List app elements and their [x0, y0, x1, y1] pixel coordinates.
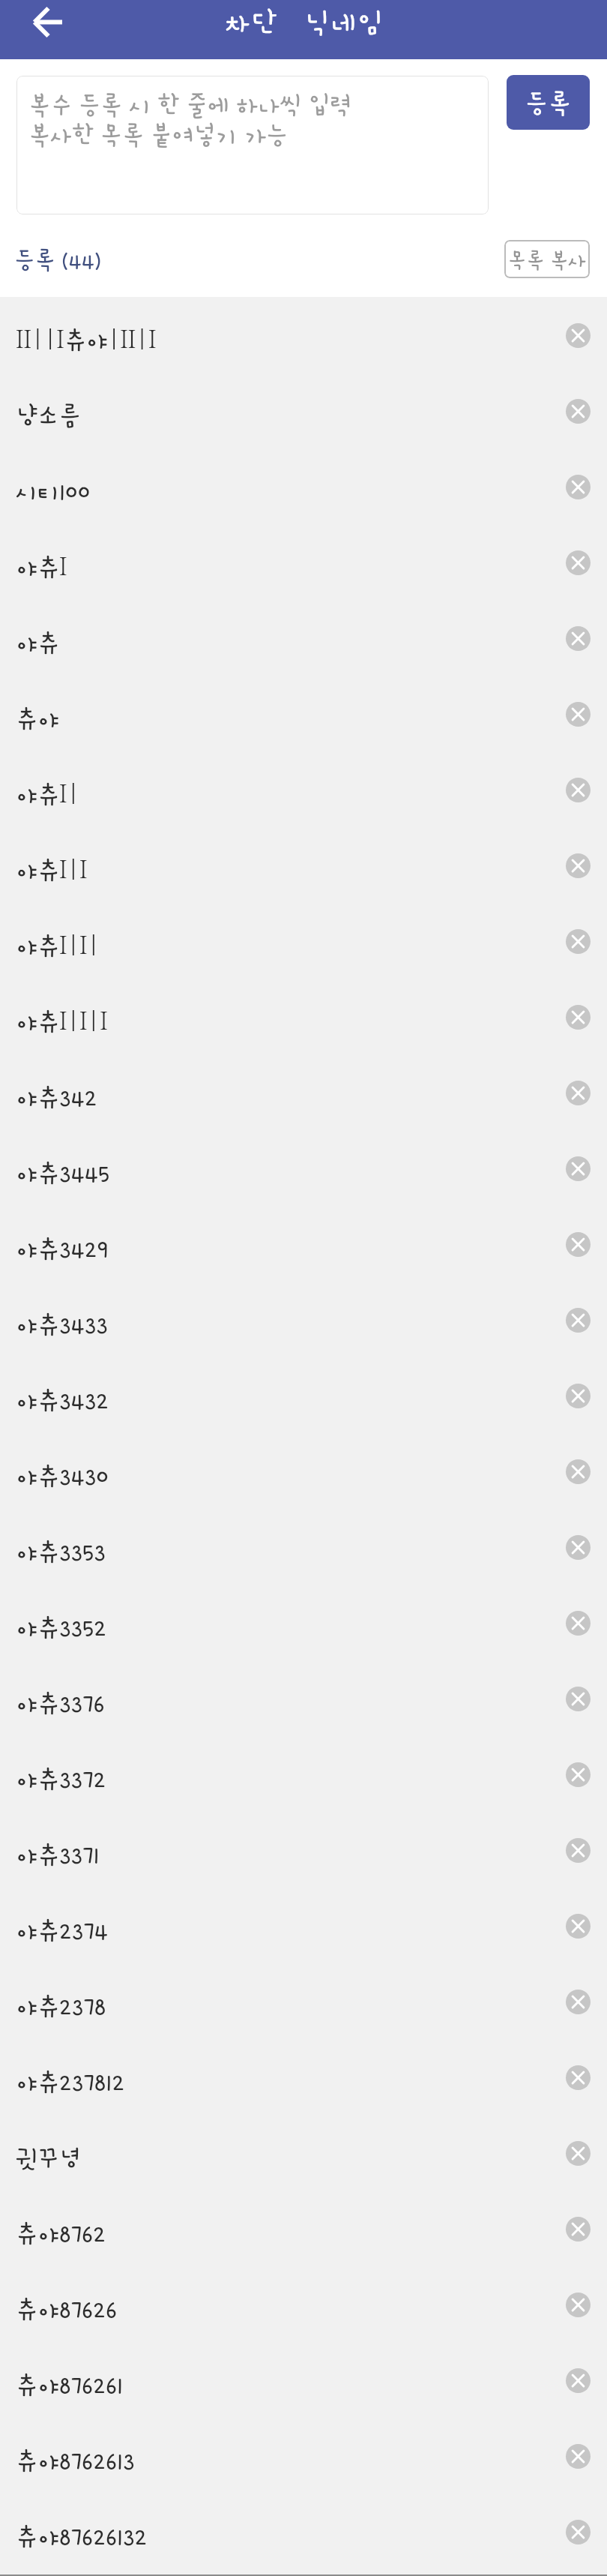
staticText: 야츄I|I: [16, 857, 88, 884]
button[interactable]: Remove: [559, 771, 597, 808]
staticText: 야츄: [16, 630, 59, 657]
staticText: 복수 등록 시 한 줄에 하나씩 입력 복사한 목록 붙여넣기 가능: [28, 92, 352, 149]
staticText: 냥소름: [16, 403, 81, 430]
button[interactable]: Remove: [559, 922, 597, 960]
button[interactable]: 야츄3433: [0, 1282, 607, 1357]
staticText: 야츄2378: [16, 1993, 106, 2020]
button[interactable]: Remove: [559, 1831, 597, 1869]
button[interactable]: Remove: [559, 1453, 597, 1490]
button[interactable]: Remove: [559, 847, 597, 884]
button[interactable]: Remove: [559, 695, 597, 733]
staticText: 야츄3445: [16, 1160, 110, 1187]
staticText: 목록 복사: [508, 250, 587, 272]
button[interactable]: 야츄2378: [0, 1963, 607, 2039]
button[interactable]: 목록 복사: [504, 240, 590, 278]
staticText: 야츄2374: [16, 1918, 109, 1945]
staticText: 등록: [525, 90, 572, 118]
button[interactable]: 야츄3445: [0, 1130, 607, 1206]
button[interactable]: 츄야: [0, 676, 607, 751]
staticText: 야츄3376: [16, 1690, 105, 1717]
staticText: 야츄342: [16, 1084, 97, 1111]
button[interactable]: 야츄3372: [0, 1736, 607, 1812]
staticText: 야츄3371: [16, 1842, 100, 1869]
button[interactable]: Remove: [559, 1528, 597, 1566]
button[interactable]: 츄야876261: [0, 2342, 607, 2418]
button[interactable]: Remove: [559, 544, 597, 581]
button[interactable]: 등록: [507, 75, 590, 130]
staticText: 귓꾸녕: [16, 2145, 81, 2172]
button[interactable]: Remove: [559, 1301, 597, 1339]
button[interactable]: Remove: [559, 316, 597, 354]
button[interactable]: II||I츄야|II|I: [0, 297, 607, 373]
staticText: 츄야876261: [16, 2372, 124, 2399]
staticText: 야츄3353: [16, 1539, 106, 1566]
button[interactable]: 츄야87626132: [0, 2494, 607, 2569]
staticText: 시티100: [16, 478, 91, 505]
button[interactable]: 야츄342: [0, 1054, 607, 1130]
button[interactable]: 야츄I|: [0, 751, 607, 827]
staticText: 야츄3429: [16, 1236, 109, 1263]
button[interactable]: 야츄237812: [0, 2039, 607, 2115]
button[interactable]: 야츄3376: [0, 1660, 607, 1736]
button[interactable]: Remove: [559, 2362, 597, 2399]
button[interactable]: Remove: [559, 2134, 597, 2172]
staticText: 츄야87626132: [16, 2524, 148, 2551]
button[interactable]: 츄야87626: [0, 2266, 607, 2342]
button[interactable]: Remove: [559, 1604, 597, 1642]
button[interactable]: Back: [13, 2, 81, 41]
button[interactable]: 츄야8762: [0, 2191, 607, 2266]
staticText: 야츄I|I|I: [16, 1009, 108, 1036]
staticText: 츄야: [16, 706, 59, 733]
staticText: 야츄I|I|: [16, 933, 100, 960]
staticText: 차단 닉네임: [225, 7, 385, 39]
button[interactable]: Remove: [559, 2210, 597, 2248]
staticText: II||I츄야|II|I: [16, 327, 157, 354]
button[interactable]: 야츄2374: [0, 1888, 607, 1963]
button[interactable]: 야츄3432: [0, 1357, 607, 1433]
button[interactable]: 야츄: [0, 600, 607, 676]
button[interactable]: 야츄I|I|: [0, 903, 607, 979]
staticText: 야츄237812: [16, 2069, 125, 2096]
button[interactable]: Remove: [559, 1377, 597, 1414]
button[interactable]: Remove: [559, 392, 597, 430]
staticText: 야츄3430: [16, 1463, 109, 1490]
button[interactable]: Remove: [559, 2437, 597, 2475]
button[interactable]: Remove: [559, 1983, 597, 2020]
button[interactable]: 복수 등록 시 한 줄에 하나씩 입력 복사한 목록 붙여넣기 가능: [16, 76, 489, 214]
button[interactable]: Remove: [559, 2059, 597, 2096]
button[interactable]: 야츄I|I|I: [0, 979, 607, 1054]
staticText: 등록 (44): [14, 247, 101, 273]
staticText: 야츄I|: [16, 781, 80, 808]
button[interactable]: 야츄I|I: [0, 827, 607, 903]
button[interactable]: 야츄3371: [0, 1812, 607, 1888]
staticText: 야츄3432: [16, 1387, 109, 1414]
button[interactable]: 야츄I: [0, 524, 607, 600]
button[interactable]: Remove: [559, 1225, 597, 1263]
button[interactable]: Remove: [559, 1680, 597, 1717]
button[interactable]: 야츄3352: [0, 1585, 607, 1660]
button[interactable]: Remove: [559, 1756, 597, 1793]
staticText: 야츄3372: [16, 1766, 106, 1793]
staticText: 츄야8762: [16, 2221, 106, 2248]
button[interactable]: Remove: [559, 619, 597, 657]
button[interactable]: Remove: [559, 1907, 597, 1945]
button[interactable]: 시티100: [0, 448, 607, 524]
button[interactable]: Remove: [559, 2513, 597, 2551]
staticText: 야츄I: [16, 554, 67, 581]
button[interactable]: Remove: [559, 2286, 597, 2323]
staticText: 야츄3433: [16, 1312, 108, 1339]
button[interactable]: 야츄3353: [0, 1509, 607, 1585]
button[interactable]: Remove: [559, 468, 597, 505]
button[interactable]: 츄야8762613: [0, 2418, 607, 2494]
staticText: 츄야87626: [16, 2296, 117, 2323]
button[interactable]: 귓꾸녕: [0, 2115, 607, 2191]
staticText: 츄야8762613: [16, 2448, 135, 2475]
button[interactable]: 야츄3429: [0, 1206, 607, 1282]
button[interactable]: 냥소름: [0, 373, 607, 448]
button[interactable]: Remove: [559, 1150, 597, 1187]
button[interactable]: Remove: [559, 998, 597, 1036]
button[interactable]: Remove: [559, 1074, 597, 1111]
button[interactable]: 야츄3430: [0, 1433, 607, 1509]
staticText: 야츄3352: [16, 1615, 107, 1642]
